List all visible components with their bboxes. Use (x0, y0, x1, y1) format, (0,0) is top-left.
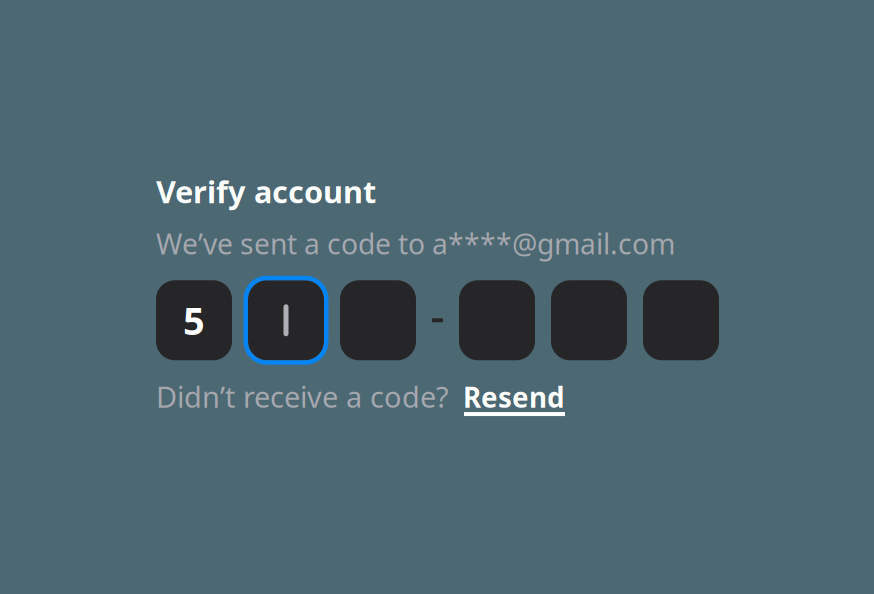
staticText: We’ve sent a code to a****@gmail.com (156, 225, 675, 262)
staticText: Verify account (156, 171, 376, 212)
staticText: Didn’t receive a code? (156, 377, 449, 416)
staticText: Resend (463, 378, 565, 415)
button[interactable]: Code digit field (340, 280, 416, 360)
button[interactable]: Code digit field (643, 280, 719, 360)
button[interactable]: Resend (463, 378, 565, 415)
button[interactable]: Code digit field (551, 280, 627, 360)
button[interactable]: Code digit 5 (156, 280, 232, 360)
button[interactable]: Code digit field (248, 280, 324, 360)
button[interactable]: Code digit field (459, 280, 535, 360)
staticText: 5 (183, 295, 205, 345)
